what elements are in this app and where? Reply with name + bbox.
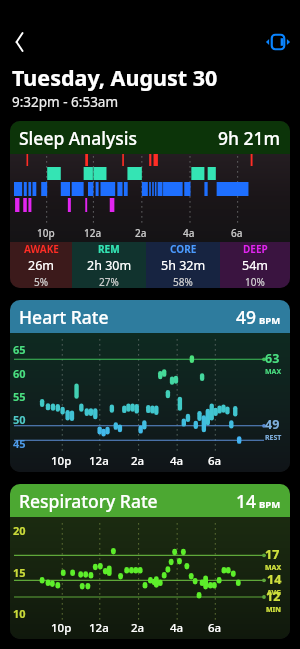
staticText: 6a (231, 226, 243, 240)
staticText: 14 (236, 489, 257, 513)
staticText: 10p (51, 620, 72, 636)
staticText: 10p (51, 453, 72, 469)
staticText: 55 (13, 389, 26, 404)
staticText: BPM (259, 314, 281, 327)
staticText: 10p (37, 226, 55, 240)
staticText: BPM (259, 498, 281, 511)
staticText: Respiratory Rate (19, 489, 158, 513)
button[interactable]: CORE (146, 242, 220, 288)
staticText: 12a (89, 453, 109, 469)
staticText: 65 (13, 342, 26, 357)
staticText: 4a (170, 620, 184, 636)
staticText: 49 (236, 305, 257, 329)
staticText: 14 (267, 571, 282, 588)
staticText: REST (265, 433, 282, 443)
staticText: 49 (265, 416, 280, 433)
button[interactable]: Watch data source (262, 26, 294, 58)
staticText: 17 (265, 546, 280, 563)
button[interactable]: AWAKE (10, 242, 72, 288)
button[interactable]: Back (4, 26, 36, 58)
staticText: AVG (267, 588, 282, 598)
staticText: 58% (173, 275, 193, 288)
staticText: 10% (245, 275, 265, 288)
staticText: AWAKE (24, 242, 59, 256)
staticText: 27% (99, 275, 119, 288)
staticText: CORE (170, 242, 197, 256)
button[interactable]: REM (72, 242, 146, 288)
staticText: 4a (170, 453, 184, 469)
staticText: 2h 30m (87, 257, 132, 274)
button[interactable]: Sleep Analysis (10, 121, 290, 288)
staticText: 5% (34, 275, 49, 288)
button[interactable]: Respiratory Rate (10, 484, 290, 639)
staticText: MAX (265, 563, 282, 573)
staticText: 6a (208, 453, 222, 469)
staticText: 2a (131, 620, 145, 636)
staticText: Heart Rate (19, 305, 109, 329)
staticText: 26m (28, 257, 54, 274)
staticText: 63 (265, 350, 280, 367)
button[interactable]: DEEP (220, 242, 290, 288)
staticText: 12 (266, 588, 281, 605)
staticText: Tuesday, August 30 (12, 63, 218, 92)
staticText: MIN (266, 605, 282, 615)
staticText: 6a (208, 620, 222, 636)
staticText: MAX (265, 367, 282, 377)
staticText: 45 (13, 436, 26, 451)
staticText: Sleep Analysis (19, 126, 137, 150)
staticText: 9h 21m (218, 126, 281, 150)
staticText: 12a (84, 226, 102, 240)
staticText: 60 (13, 366, 26, 381)
staticText: 12a (89, 620, 109, 636)
button[interactable]: Heart Rate (10, 300, 290, 472)
staticText: 50 (13, 412, 26, 427)
staticText: REM (98, 242, 120, 256)
staticText: 4a (183, 226, 195, 240)
staticText: 2a (135, 226, 147, 240)
staticText: DEEP (243, 242, 268, 256)
staticText: 54m (242, 257, 268, 274)
staticText: 20 (13, 523, 26, 538)
staticText: 10 (13, 606, 26, 621)
staticText: 9:32pm - 6:53am (12, 93, 119, 111)
staticText: 15 (13, 565, 26, 580)
staticText: 2a (131, 453, 145, 469)
staticText: 5h 32m (161, 257, 206, 274)
